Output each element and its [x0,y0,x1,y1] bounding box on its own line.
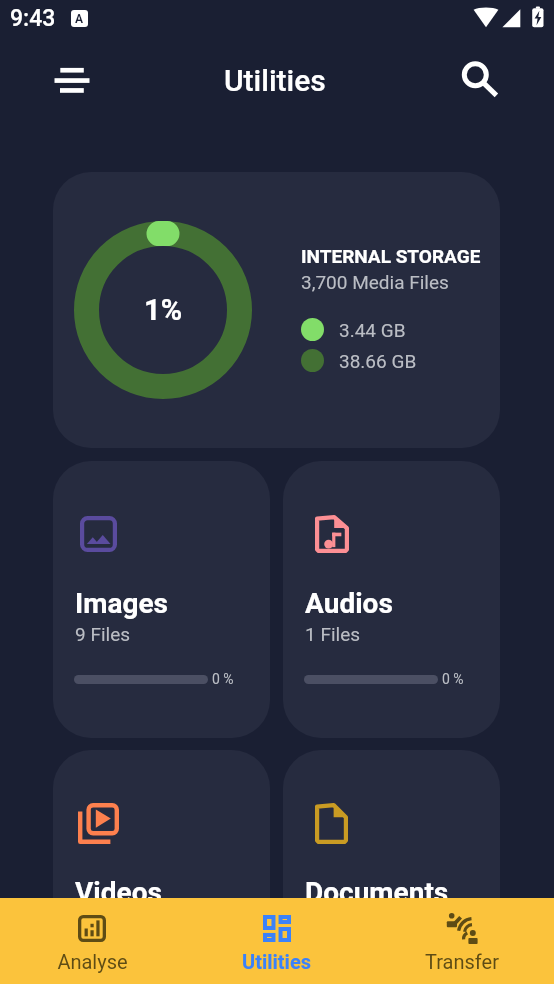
staticText: 3,700 Media Files [301,271,449,293]
staticText: 38.66 GB [339,350,417,372]
staticText: 9 Files [75,623,131,645]
button[interactable]: Utilities [184,898,369,984]
staticText: 0 Files [75,912,131,934]
staticText: Transfer [425,950,499,973]
staticText: Utilities [224,63,326,98]
button[interactable]: Search [452,52,504,104]
button[interactable]: Transfer [369,898,554,984]
staticText: Audios [305,587,393,620]
button[interactable]: Analyse [0,898,184,984]
staticText: 1% [144,293,183,327]
staticText: Videos [75,876,162,909]
button[interactable]: Documents [283,750,500,984]
button[interactable]: Menu [46,54,98,106]
staticText: INTERNAL STORAGE [301,245,481,267]
staticText: Utilities [242,950,311,973]
staticText: Documents [305,876,449,909]
staticText: 9:43 [10,5,56,32]
staticText: 0 % [442,960,464,976]
staticText: A [75,12,84,26]
button[interactable]: Videos [53,750,270,984]
staticText: 3.44 GB [339,319,406,341]
staticText: 0 % [442,671,464,687]
staticText: 1 Files [305,623,361,645]
button[interactable]: Audios [283,461,500,738]
button[interactable]: 1% [53,172,500,448]
staticText: Images [75,587,168,620]
button[interactable]: Images [53,461,270,738]
staticText: 0 % [212,671,234,687]
staticText: Analyse [57,950,128,973]
